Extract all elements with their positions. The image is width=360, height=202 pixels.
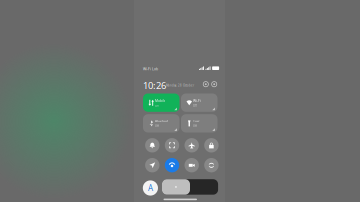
button[interactable]: Power — [212, 82, 217, 87]
staticText: Monday, 28 October — [166, 84, 194, 87]
staticText: Wi-Fi — [193, 98, 201, 103]
button[interactable]: Cast — [165, 138, 179, 152]
button[interactable]: Wi-Fi — [181, 93, 217, 112]
staticText: Bluetooth — [155, 119, 170, 124]
button[interactable]: Torch — [181, 114, 217, 132]
staticText: Torch — [193, 119, 202, 124]
staticText: Off — [155, 125, 159, 128]
staticText: Mobile data — [155, 98, 174, 103]
staticText: A — [148, 183, 153, 193]
button[interactable]: Location — [145, 158, 159, 172]
staticText: Wi-Fi Lab — [143, 67, 158, 71]
button[interactable]: Auto rotate — [204, 158, 219, 172]
button[interactable]: Silent mode — [145, 138, 159, 152]
button[interactable]: Brightness — [162, 179, 218, 195]
button[interactable]: Auto brightness — [143, 180, 158, 196]
button[interactable]: Settings — [203, 82, 208, 87]
staticText: Off — [193, 104, 197, 107]
staticText: Off — [193, 125, 197, 128]
staticText: On — [155, 104, 159, 107]
button[interactable]: Screen lock — [204, 138, 219, 152]
button[interactable]: Hotspot — [165, 158, 179, 172]
button[interactable]: Screen recorder — [184, 158, 199, 172]
button[interactable]: Aeroplane mode — [184, 138, 199, 152]
button[interactable]: Mobile data — [143, 93, 179, 112]
button[interactable]: Bluetooth — [143, 114, 179, 132]
staticText: 10:26 — [143, 79, 166, 92]
